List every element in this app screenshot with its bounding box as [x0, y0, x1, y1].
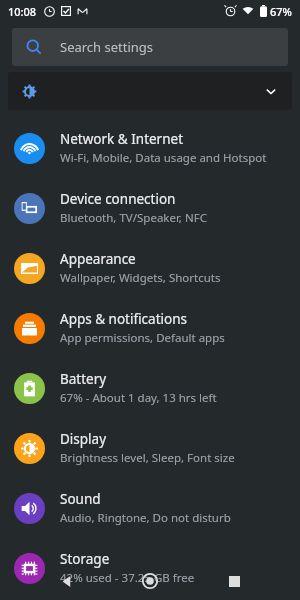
button[interactable]: Dark theme suggestion [8, 72, 292, 110]
button[interactable]: Storage [0, 538, 300, 598]
staticText: Apps & notifications [60, 310, 187, 328]
button[interactable]: Home [133, 564, 167, 598]
staticText: Bluetooth, TV/Speaker, NFC [60, 210, 207, 226]
staticText: Brightness level, Sleep, Font size [60, 450, 235, 466]
staticText: 42% used - 37.25 GB free [60, 570, 195, 586]
staticText: Device connection [60, 190, 176, 208]
staticText: Sound [60, 490, 101, 508]
staticText: Network & Internet [60, 130, 184, 148]
button[interactable]: Network & Internet [0, 118, 300, 178]
staticText: 10:08 [8, 4, 37, 19]
button[interactable]: Display [0, 418, 300, 478]
staticText: Battery [60, 370, 107, 388]
other: Expand [264, 84, 278, 98]
staticText: Appearance [60, 250, 136, 268]
button[interactable]: Appearance [0, 238, 300, 298]
staticText: Storage [60, 550, 110, 568]
other: Dark theme suggestion [22, 84, 37, 99]
staticText: 67% [270, 4, 292, 19]
button[interactable]: Battery [0, 358, 300, 418]
button[interactable]: Recent apps [217, 564, 251, 598]
staticText: Display [60, 430, 107, 448]
button[interactable]: Back [50, 564, 84, 598]
button[interactable]: Device connection [0, 178, 300, 238]
staticText: Wi-Fi, Mobile, Data usage and Hotspot [60, 150, 267, 166]
button[interactable]: Search settings [12, 28, 288, 66]
button[interactable]: Apps & notifications [0, 298, 300, 358]
button[interactable]: Sound [0, 478, 300, 538]
staticText: Audio, Ringtone, Do not disturb [60, 510, 231, 526]
staticText: App permissions, Default apps [60, 330, 225, 346]
staticText: 67% - About 1 day, 13 hrs left [60, 390, 217, 406]
staticText: Search settings [60, 38, 154, 56]
staticText: Wallpaper, Widgets, Shortcuts [60, 270, 221, 286]
